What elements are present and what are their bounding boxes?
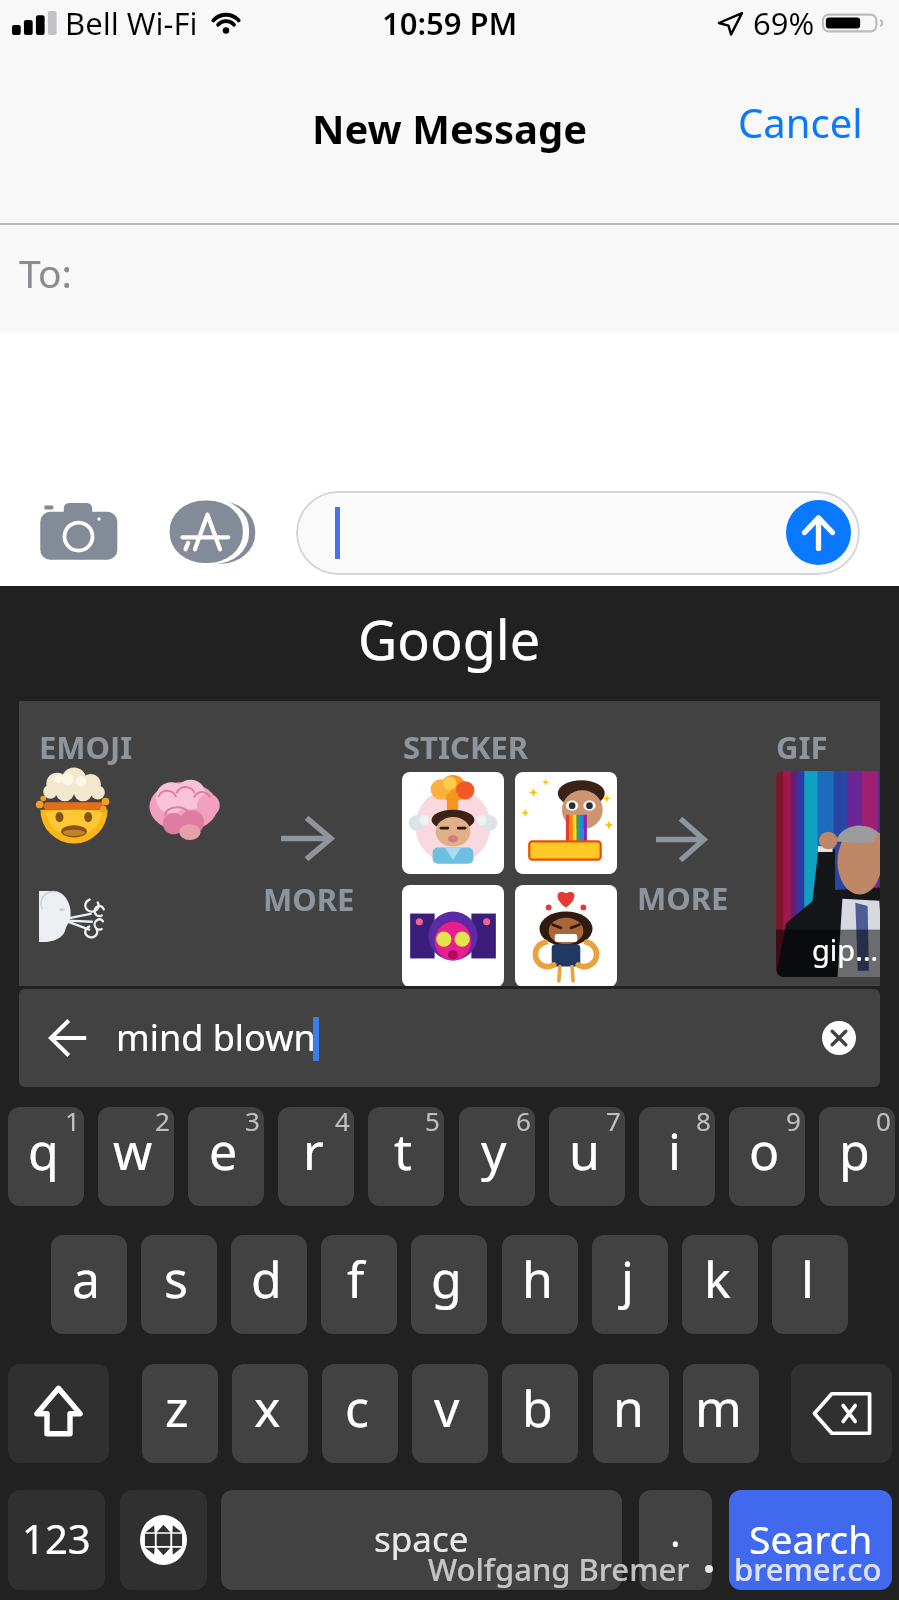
staticText: e (209, 1117, 238, 1185)
staticText: 9 (786, 1107, 801, 1138)
staticText: 5 (425, 1107, 440, 1138)
button[interactable]: i (639, 1107, 715, 1206)
staticText: j (621, 1245, 634, 1313)
button[interactable]: m (683, 1364, 759, 1463)
staticText: s (164, 1245, 188, 1313)
staticText: x (254, 1374, 281, 1442)
staticText: STICKER (403, 726, 529, 768)
staticText: i (668, 1117, 681, 1185)
button[interactable]: GIF result (776, 771, 880, 977)
staticText: 69% (753, 2, 815, 44)
button[interactable]: Send (296, 491, 860, 575)
staticText: g (431, 1245, 462, 1313)
button[interactable]: Change keyboard language (120, 1490, 207, 1590)
button[interactable]: w (98, 1107, 174, 1206)
button[interactable]: l (772, 1235, 848, 1334)
staticText: Google (358, 602, 541, 676)
staticText: EMOJI (39, 726, 133, 768)
button[interactable]: Backspace (791, 1364, 892, 1463)
button[interactable]: Sticker (402, 885, 504, 986)
button[interactable]: Brain emoji (148, 777, 219, 840)
staticText: w (113, 1117, 153, 1185)
button[interactable]: Sticker (402, 772, 504, 874)
button[interactable]: b (502, 1364, 578, 1463)
staticText: m (695, 1374, 742, 1442)
button[interactable]: Send (786, 500, 851, 565)
button[interactable]: y (459, 1107, 535, 1206)
staticText: MORE (263, 878, 355, 920)
staticText: GIF (776, 726, 828, 768)
staticText: c (345, 1374, 369, 1442)
button[interactable]: v (412, 1364, 488, 1463)
staticText: To: (19, 246, 73, 299)
button[interactable]: u (549, 1107, 625, 1206)
button[interactable]: Back (19, 989, 880, 1087)
staticText: 4 (335, 1107, 350, 1138)
staticText: t (394, 1117, 413, 1185)
button[interactable]: e (188, 1107, 264, 1206)
button[interactable]: 123 (8, 1490, 105, 1590)
button[interactable]: t (368, 1107, 444, 1206)
button[interactable]: s (141, 1235, 217, 1334)
button[interactable]: h (502, 1235, 578, 1334)
staticText: Bell Wi-Fi (65, 2, 198, 44)
staticText: Wolfgang Bremer (428, 1548, 690, 1590)
button[interactable]: . (639, 1490, 712, 1590)
button[interactable]: More stickers (633, 809, 765, 925)
staticText: b (522, 1374, 553, 1442)
button[interactable]: Sticker (515, 772, 617, 874)
button[interactable]: k (682, 1235, 758, 1334)
button[interactable]: f (321, 1235, 397, 1334)
button[interactable]: Clear search (814, 1013, 864, 1063)
staticText: mind blown (116, 1013, 316, 1062)
button[interactable]: Wind face emoji (37, 887, 104, 943)
staticText: Search (749, 1512, 873, 1565)
button[interactable]: d (231, 1235, 307, 1334)
staticText: d (251, 1245, 282, 1313)
button[interactable]: r (278, 1107, 354, 1206)
button[interactable]: c (322, 1364, 398, 1463)
button[interactable]: Take photo (26, 485, 131, 565)
button[interactable]: j (592, 1235, 668, 1334)
button[interactable]: p (819, 1107, 895, 1206)
button[interactable]: q (8, 1107, 84, 1206)
staticText: v (434, 1374, 460, 1442)
staticText: p (839, 1117, 870, 1185)
staticText: Cancel (738, 95, 863, 149)
staticText: y (481, 1117, 507, 1185)
staticText: r (303, 1117, 324, 1185)
button[interactable]: Cancel (720, 79, 881, 165)
button[interactable]: Search (729, 1490, 892, 1590)
staticText: New Message (312, 101, 588, 155)
staticText: h (522, 1245, 553, 1313)
button[interactable]: App Store (163, 488, 258, 563)
staticText: l (801, 1245, 814, 1313)
button[interactable]: Exploding head emoji (39, 767, 109, 842)
staticText: 7 (606, 1107, 621, 1138)
staticText: u (569, 1117, 600, 1185)
staticText: 2 (155, 1107, 170, 1138)
button[interactable]: Back (40, 1010, 96, 1066)
staticText: bremer.co (734, 1548, 882, 1590)
button[interactable]: space (221, 1490, 622, 1590)
staticText: k (704, 1245, 731, 1313)
button[interactable]: n (593, 1364, 669, 1463)
staticText: gip… (812, 930, 879, 969)
staticText: o (749, 1117, 780, 1185)
button[interactable]: Sticker (515, 885, 617, 986)
button[interactable]: z (142, 1364, 218, 1463)
staticText: 1 (65, 1107, 80, 1138)
button[interactable]: To: (0, 225, 899, 333)
staticText: space (374, 1515, 469, 1563)
button[interactable]: More emoji (260, 809, 392, 925)
button[interactable]: g (411, 1235, 487, 1334)
button[interactable]: o (729, 1107, 805, 1206)
button[interactable]: Shift (8, 1364, 109, 1463)
button[interactable]: a (51, 1235, 127, 1334)
staticText: a (72, 1245, 101, 1313)
staticText: z (165, 1374, 189, 1442)
staticText: n (613, 1374, 644, 1442)
staticText: MORE (637, 877, 729, 919)
staticText: 123 (22, 1511, 91, 1565)
button[interactable]: x (232, 1364, 308, 1463)
